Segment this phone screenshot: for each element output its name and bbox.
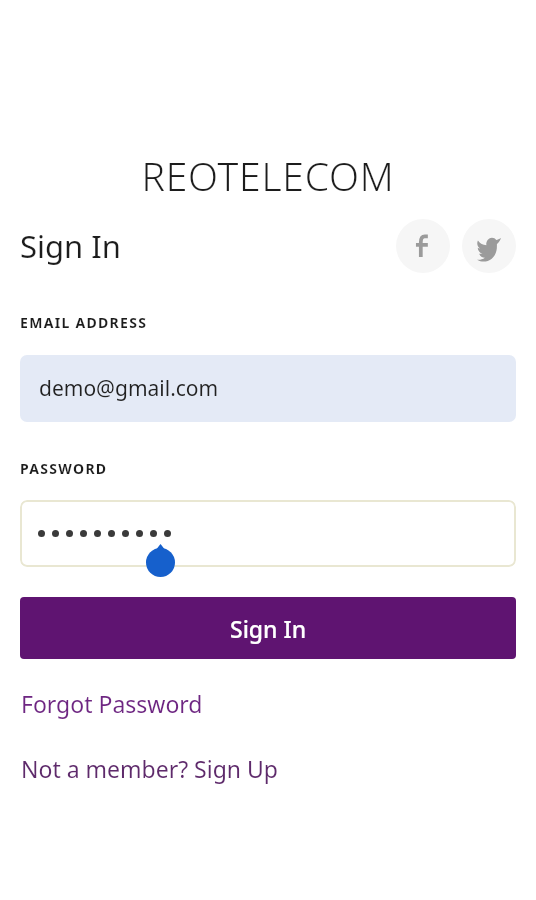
staticText: Sign In [20, 225, 121, 267]
button[interactable] [20, 500, 516, 567]
button[interactable]: Not a member? Sign Up [20, 750, 279, 787]
button[interactable]: Sign In [20, 597, 516, 659]
staticText: demo@gmail.com [39, 374, 219, 403]
staticText: Not a member? Sign Up [21, 753, 278, 784]
button[interactable]: Sign in with Twitter [462, 219, 516, 273]
button[interactable]: Sign in with Facebook [396, 219, 450, 273]
button[interactable]: Forgot Password [20, 685, 204, 722]
staticText: PASSWORD [20, 459, 108, 478]
staticText: Forgot Password [21, 688, 203, 719]
staticText: EMAIL ADDRESS [20, 313, 148, 332]
staticText: REOTELECOM [0, 149, 536, 202]
button[interactable]: demo@gmail.com [20, 355, 516, 422]
staticText: Sign In [230, 613, 307, 644]
